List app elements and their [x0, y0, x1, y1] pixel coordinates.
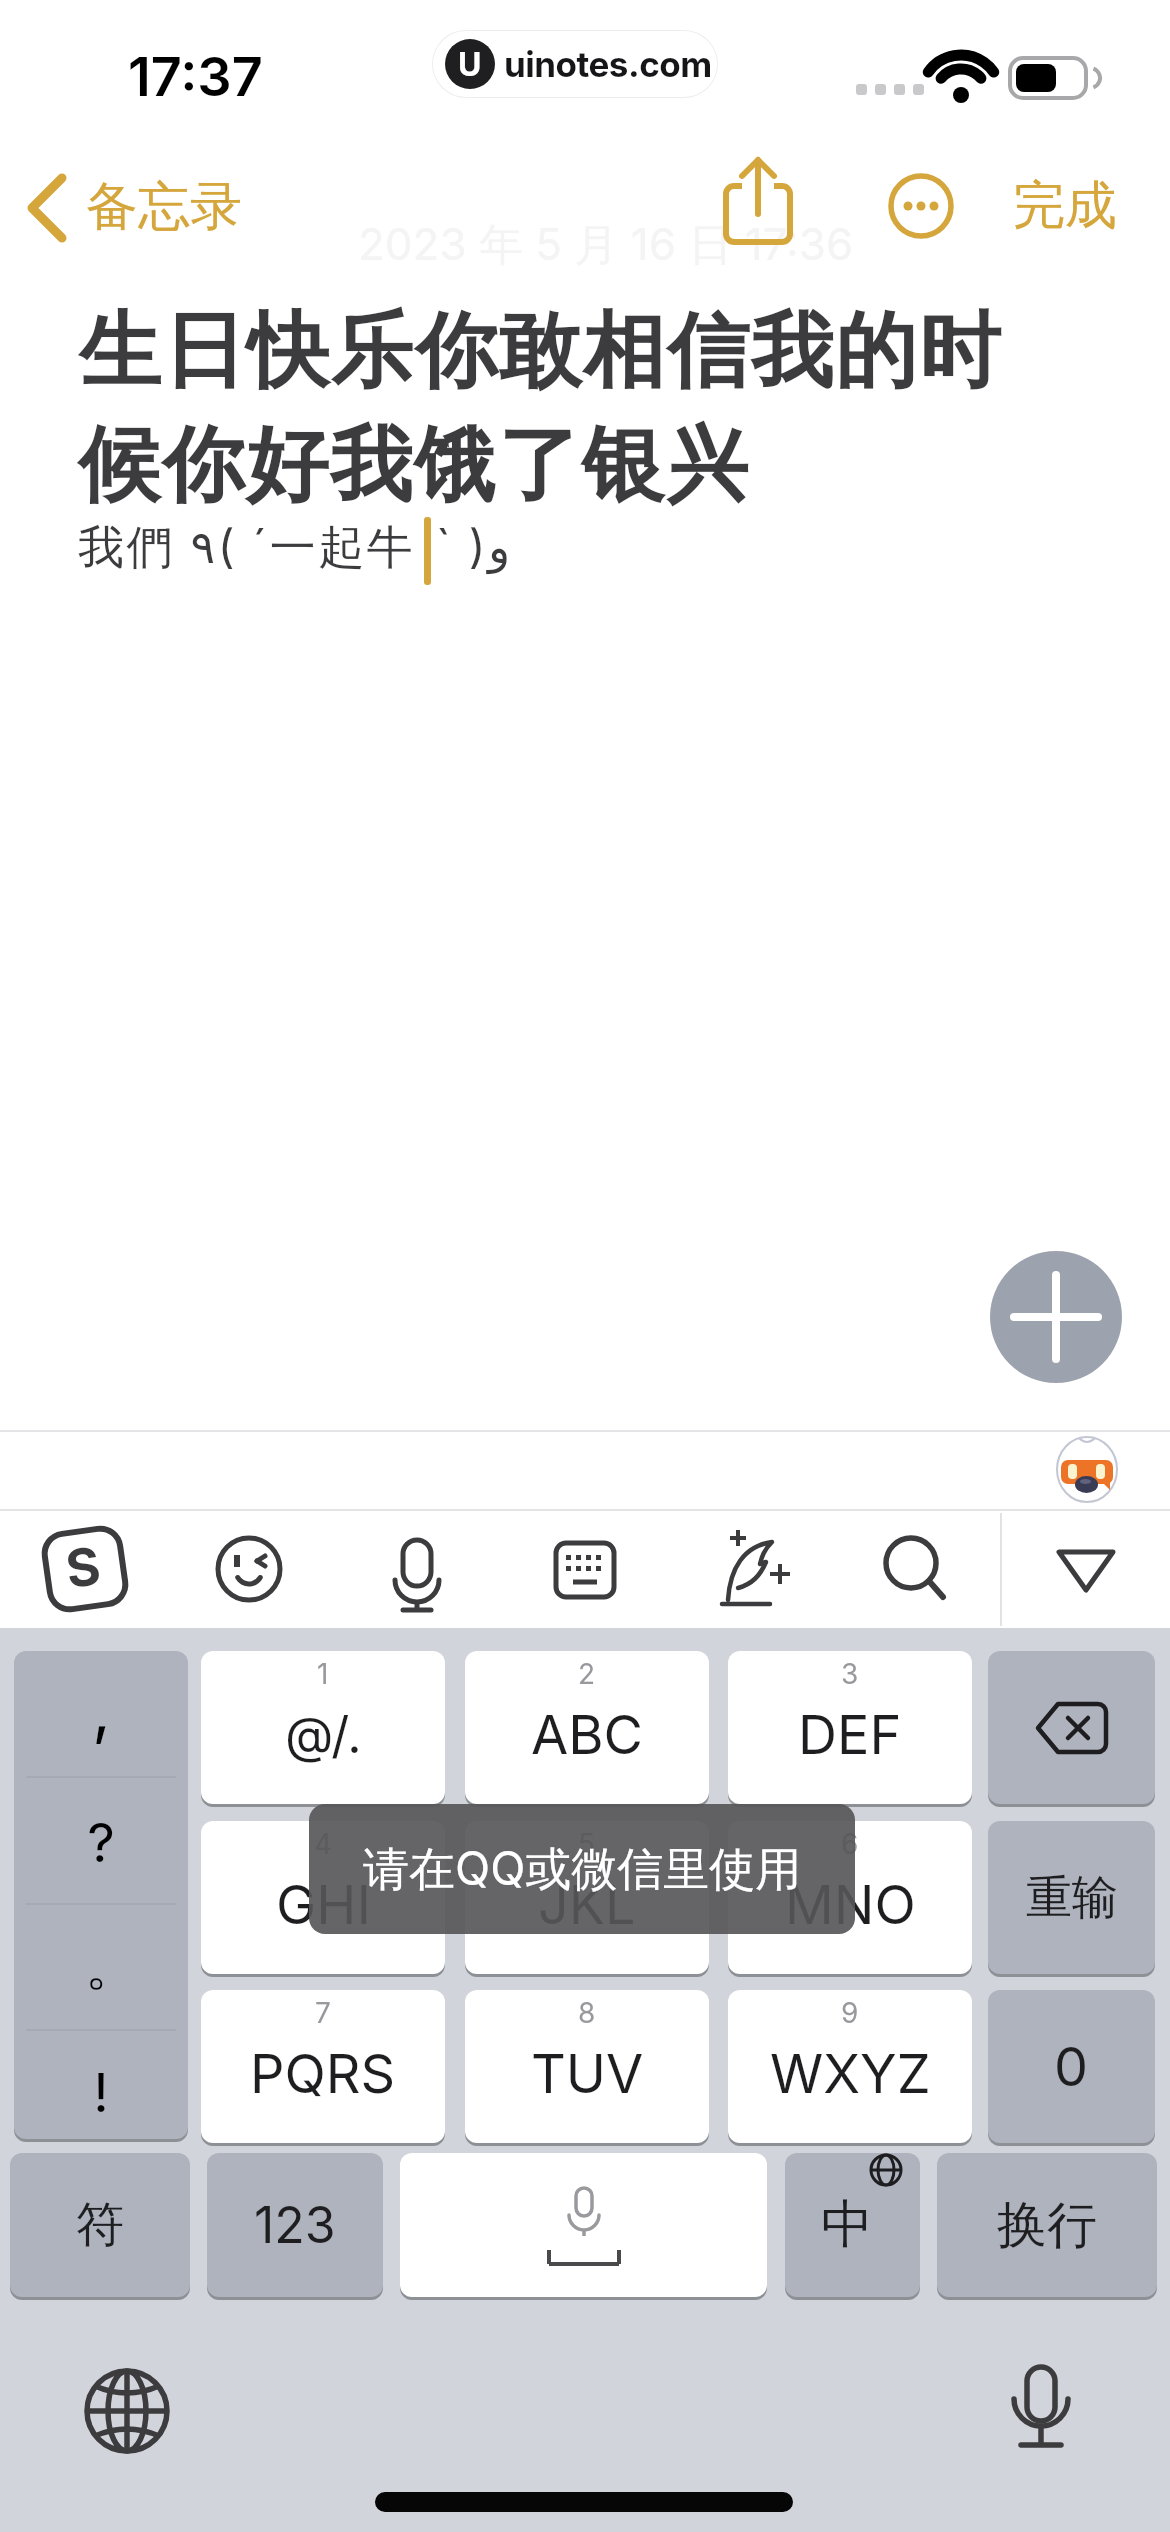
button[interactable]: 0 — [988, 1990, 1155, 2143]
button[interactable] — [14, 1651, 188, 2139]
staticText: 9 — [841, 1996, 859, 2030]
button[interactable]: 备忘录 — [20, 160, 250, 250]
staticText: 生日快乐你敢相信我的时 候你好我饿了银兴 — [78, 300, 1002, 517]
staticText: 备忘录 — [86, 174, 242, 240]
staticText: 2 — [578, 1657, 596, 1691]
button[interactable]: 完成 — [1000, 168, 1130, 244]
staticText: DEF — [798, 1702, 902, 1767]
staticText: WXYZ — [770, 2041, 931, 2106]
button[interactable] — [880, 1532, 952, 1604]
staticText: 123 — [254, 2195, 336, 2255]
staticText: 0 — [1054, 2034, 1089, 2099]
staticText: S — [62, 1534, 105, 1601]
button[interactable] — [1010, 2360, 1074, 2456]
button[interactable] — [214, 1534, 284, 1604]
staticText: GHI — [276, 1872, 371, 1937]
staticText: ? — [87, 1810, 115, 1875]
staticText: 完成 — [1013, 173, 1117, 239]
button[interactable] — [714, 1524, 794, 1616]
staticText: JKL — [538, 1872, 636, 1937]
button[interactable] — [384, 1530, 450, 1616]
button[interactable] — [712, 150, 804, 254]
staticText: ` )و — [436, 518, 513, 574]
button[interactable]: 7 — [201, 1990, 445, 2143]
staticText: 换行 — [997, 2194, 1097, 2257]
staticText: 我們 ٩( ´一起牛 — [78, 518, 416, 576]
staticText: PQRS — [250, 2041, 396, 2106]
button[interactable]: 8 — [465, 1990, 709, 2143]
button[interactable]: 1 — [201, 1651, 445, 1804]
button[interactable]: 9 — [728, 1990, 972, 2143]
staticText: 1 — [317, 1657, 329, 1691]
staticText: 8 — [578, 1996, 596, 2030]
staticText: ! — [93, 2060, 109, 2125]
button[interactable] — [1050, 1540, 1122, 1600]
staticText: ABC — [531, 1702, 644, 1767]
button[interactable] — [82, 2366, 172, 2456]
staticText: uinotes.com — [504, 43, 712, 85]
staticText: 3 — [841, 1657, 859, 1691]
staticText: 6 — [841, 1827, 859, 1861]
staticText: 。 — [85, 1932, 139, 2000]
button[interactable] — [553, 1540, 617, 1600]
button[interactable]: 5 — [465, 1821, 709, 1974]
button[interactable]: 6 — [728, 1821, 972, 1974]
staticText: 2023 年 5 月 16 日 17:36 — [358, 217, 854, 273]
staticText: MNO — [785, 1872, 916, 1937]
button[interactable]: 换行 — [937, 2153, 1157, 2297]
button[interactable]: 123 — [207, 2153, 383, 2297]
button[interactable] — [400, 2153, 767, 2297]
button[interactable]: U — [432, 30, 718, 98]
staticText: 请在QQ或微信里使用 — [363, 1840, 802, 1898]
staticText: 5 — [578, 1827, 596, 1861]
button[interactable]: 符 — [10, 2153, 190, 2297]
staticText: 重输 — [1026, 1869, 1118, 1927]
button[interactable]: S — [40, 1524, 130, 1614]
button[interactable]: 4 — [201, 1821, 445, 1974]
staticText: 17:37 — [128, 44, 263, 109]
staticText: 4 — [314, 1827, 333, 1861]
button[interactable] — [990, 1251, 1122, 1383]
staticText: @/. — [285, 1705, 362, 1765]
staticText: , — [92, 1671, 111, 1748]
button[interactable]: 中 — [785, 2153, 920, 2297]
button[interactable]: 重输 — [988, 1821, 1155, 1974]
staticText: 符 — [76, 2195, 124, 2255]
staticText: U — [458, 45, 482, 84]
button[interactable]: 3 — [728, 1651, 972, 1804]
staticText: 7 — [315, 1996, 331, 2030]
staticText: TUV — [531, 2041, 644, 2106]
staticText: 中 — [821, 2192, 873, 2258]
button[interactable] — [988, 1651, 1155, 1804]
button[interactable] — [888, 173, 954, 239]
button[interactable]: 2 — [465, 1651, 709, 1804]
